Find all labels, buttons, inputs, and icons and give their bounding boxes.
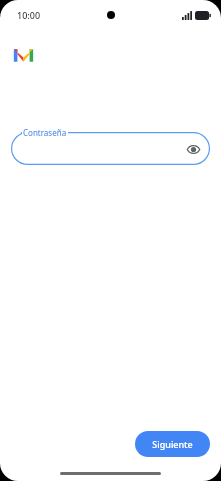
staticText: Siguiente — [152, 438, 193, 450]
button[interactable]: Mostrar contraseña — [184, 140, 202, 158]
staticText: Contraseña — [23, 127, 67, 138]
button[interactable]: Contraseña — [11, 132, 210, 165]
button[interactable]: Siguiente — [135, 431, 210, 457]
staticText: 10:00 — [17, 9, 41, 21]
